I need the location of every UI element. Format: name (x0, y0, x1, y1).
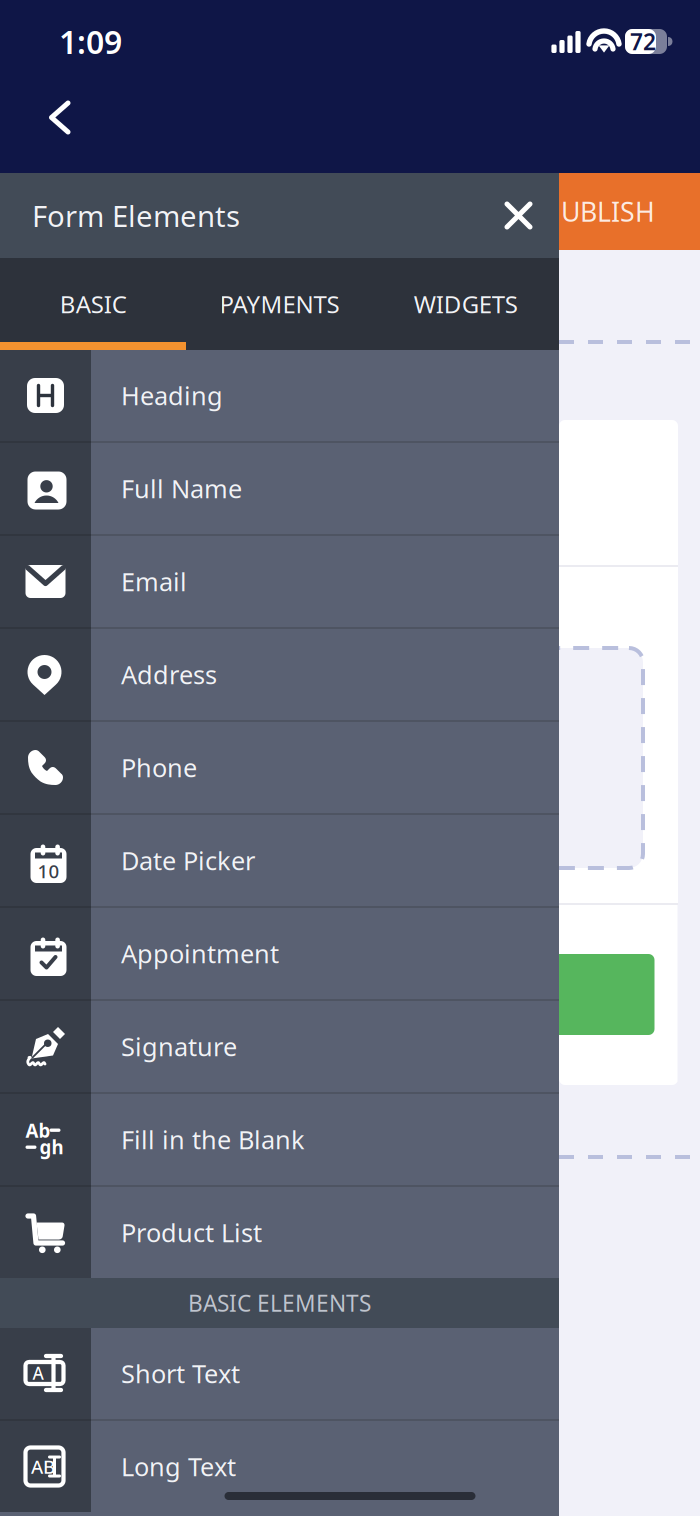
staticText: Short Text (121, 1357, 240, 1390)
staticText: Email (121, 565, 187, 598)
button[interactable]: Back (0, 66, 103, 153)
button[interactable]: Address (0, 629, 559, 720)
staticText: Fill in the Blank (121, 1123, 305, 1156)
button[interactable]: Email (0, 536, 559, 627)
button[interactable]: Signature (0, 1001, 559, 1092)
button[interactable]: WIDGETS (373, 258, 559, 350)
staticText: 10 (37, 859, 59, 883)
button[interactable]: AB (0, 1421, 559, 1512)
button[interactable]: Heading (0, 350, 559, 441)
staticText: BASIC ELEMENTS (188, 1288, 371, 1318)
button[interactable]: Close (491, 188, 546, 243)
staticText: Heading (121, 379, 223, 412)
staticText: Ab (25, 1118, 50, 1143)
staticText: Product List (121, 1216, 262, 1249)
button[interactable]: Product List (0, 1187, 559, 1278)
staticText: Appointment (121, 937, 279, 970)
button[interactable]: PAYMENTS (186, 258, 373, 350)
staticText: Form Elements (32, 196, 240, 235)
button[interactable]: Phone (0, 722, 559, 813)
staticText: Signature (121, 1030, 237, 1063)
staticText: Long Text (121, 1450, 236, 1483)
button[interactable]: Ab (0, 1094, 559, 1185)
button[interactable]: BASIC (0, 258, 186, 350)
staticText: gh (39, 1135, 63, 1159)
button[interactable]: 10 (0, 815, 559, 906)
button[interactable]: A (0, 1328, 559, 1419)
staticText: A (32, 1361, 43, 1384)
staticText: Phone (121, 751, 197, 784)
staticText: PAYMENTS (219, 288, 339, 320)
button[interactable]: Full Name (0, 443, 559, 534)
button[interactable]: Appointment (0, 908, 559, 999)
staticText: Address (121, 658, 217, 691)
staticText: 1:09 (59, 20, 122, 63)
staticText: WIDGETS (414, 288, 518, 320)
staticText: Full Name (121, 472, 242, 505)
staticText: AB (31, 1454, 55, 1479)
staticText: UBLISH (561, 194, 655, 229)
staticText: 72 (630, 26, 656, 56)
staticText: Date Picker (121, 844, 255, 877)
staticText: BASIC (60, 288, 127, 320)
